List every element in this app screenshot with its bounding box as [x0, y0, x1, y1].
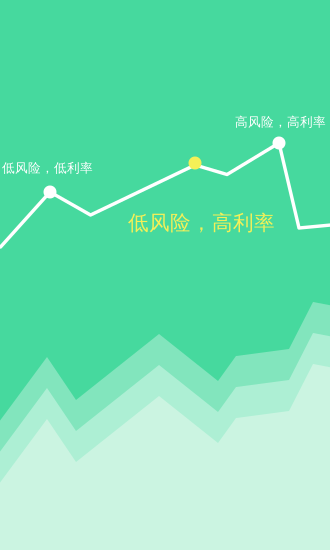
staticText: 低风险，低利率 — [2, 160, 93, 176]
staticText: 高风险，高利率 — [235, 114, 326, 130]
staticText: 低风险，高利率 — [128, 210, 275, 236]
